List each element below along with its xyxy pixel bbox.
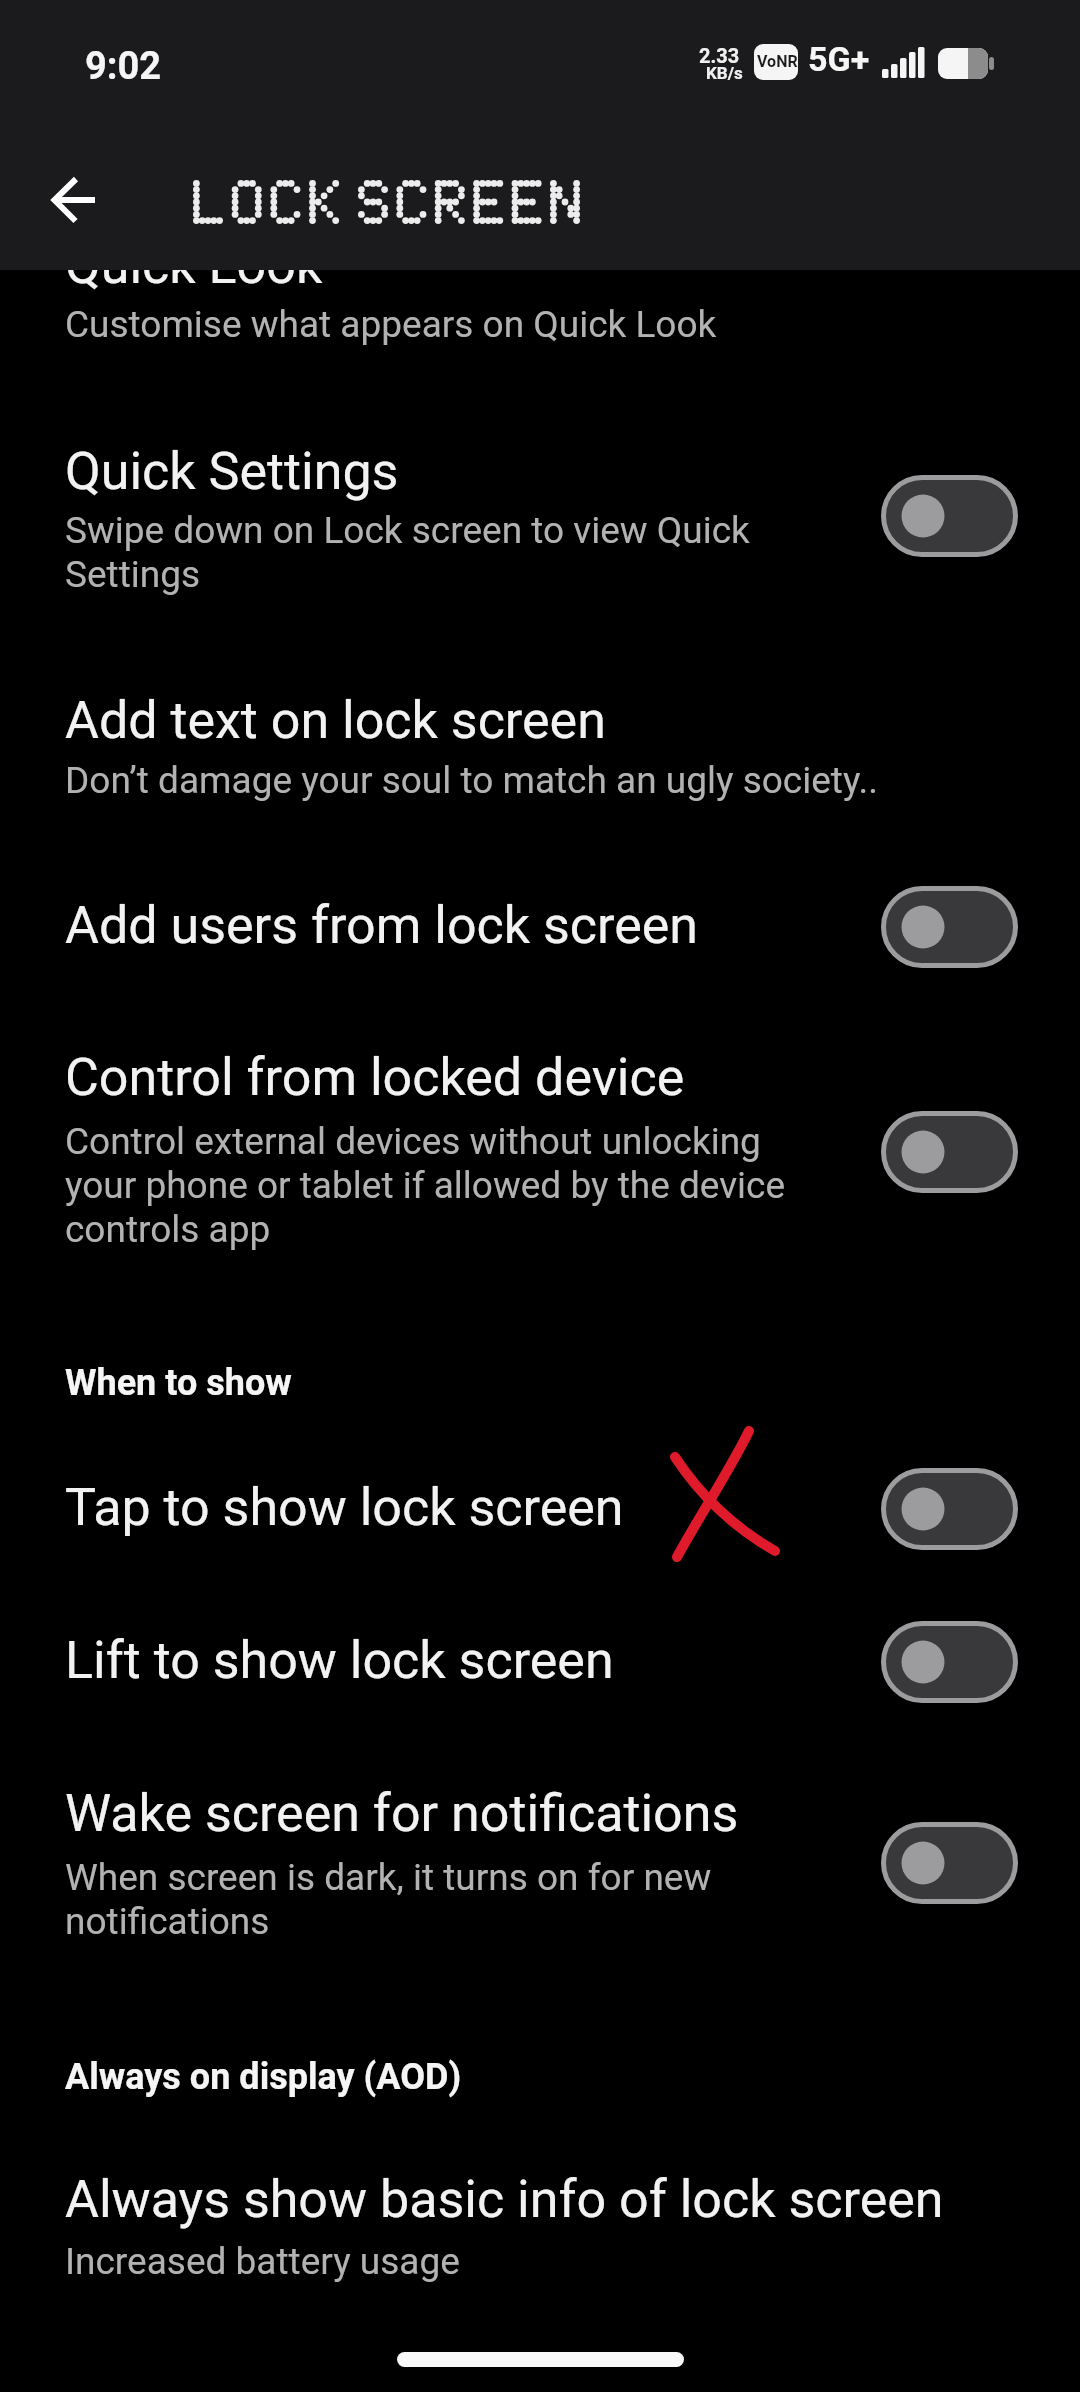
button[interactable]: Add users from lock screen: [0, 860, 1080, 995]
staticText: Lift to show lock screen: [65, 1630, 614, 1691]
staticText: Control from locked device: [65, 1047, 685, 1108]
staticText: Increased battery usage: [65, 2240, 460, 2283]
staticText: Swipe down on Lock screen to view Quick: [65, 509, 750, 552]
staticText: Quick Settings: [65, 441, 399, 502]
staticText: Wake screen for notifications: [65, 1783, 739, 1844]
staticText: your phone or tablet if allowed by the d…: [65, 1164, 786, 1207]
staticText: Tap to show lock screen: [65, 1477, 624, 1538]
staticText: Add text on lock screen: [65, 690, 606, 751]
button[interactable]: Control from locked device: [0, 1020, 1080, 1255]
button[interactable]: Quick Look: [0, 235, 1080, 355]
staticText: controls app: [65, 1208, 271, 1251]
staticText: When to show: [65, 1362, 292, 1404]
button[interactable]: Wake screen for notifications: [0, 1755, 1080, 1950]
button[interactable]: Lift to show lock screen: [0, 1595, 1080, 1730]
staticText: 2.33: [699, 44, 740, 67]
button[interactable]: Quick Settings: [0, 420, 1080, 610]
button[interactable]: [34, 160, 114, 240]
staticText: notifications: [65, 1900, 270, 1943]
staticText: Always show basic info of lock screen: [65, 2169, 944, 2230]
staticText: VoNR: [757, 52, 798, 71]
staticText: Quick Look: [65, 235, 323, 296]
staticText: Always on display (AOD): [65, 2056, 462, 2098]
staticText: Add users from lock screen: [65, 895, 699, 956]
button[interactable]: Add text on lock screen: [0, 660, 1080, 820]
staticText: Don’t damage your soul to match an ugly …: [65, 759, 879, 802]
button[interactable]: Always show basic info of lock screen: [0, 2130, 1080, 2295]
staticText: When screen is dark, it turns on for new: [65, 1856, 712, 1899]
staticText: Control external devices without unlocki…: [65, 1120, 761, 1163]
staticText: KB/s: [706, 63, 743, 83]
staticText: Customise what appears on Quick Look: [65, 303, 717, 346]
staticText: 9:02: [85, 44, 162, 89]
button[interactable]: Tap to show lock screen: [0, 1440, 1080, 1580]
staticText: Settings: [65, 553, 201, 596]
staticText: 5G+: [808, 39, 870, 79]
